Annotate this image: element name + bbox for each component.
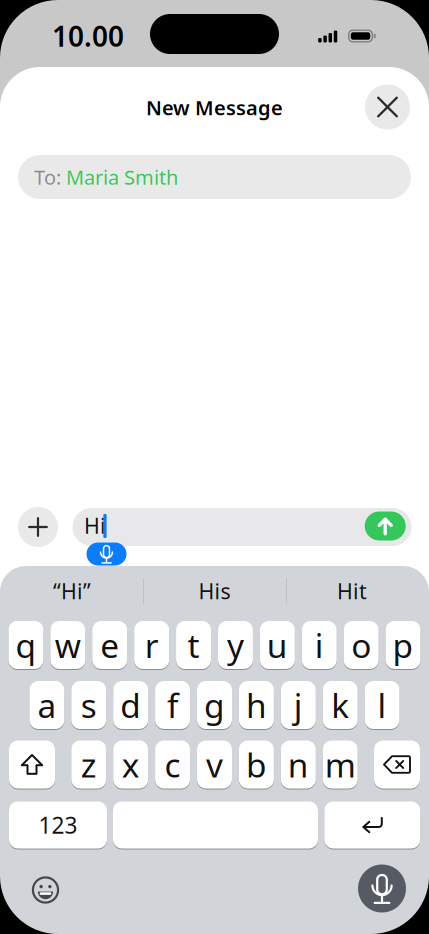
button[interactable]: Emoji — [23, 868, 67, 912]
staticText: g — [204, 683, 225, 727]
button[interactable]: u — [260, 621, 295, 669]
button[interactable]: a — [29, 681, 64, 729]
staticText: v — [206, 742, 223, 787]
button[interactable]: Hit — [283, 573, 421, 609]
button[interactable]: w — [50, 621, 85, 669]
button[interactable]: v — [197, 740, 232, 788]
staticText: r — [145, 623, 159, 667]
button[interactable]: Close — [365, 84, 410, 129]
button[interactable]: c — [155, 740, 190, 788]
button[interactable]: f — [155, 681, 190, 729]
button[interactable]: x — [113, 740, 148, 788]
button[interactable]: t — [176, 621, 211, 669]
staticText: s — [81, 683, 97, 727]
staticText: b — [246, 742, 267, 787]
button[interactable]: Send — [365, 511, 406, 540]
button[interactable]: j — [281, 681, 316, 729]
staticText: u — [267, 623, 288, 667]
staticText: n — [288, 742, 309, 787]
staticText: h — [246, 683, 267, 727]
staticText: l — [378, 683, 387, 727]
button[interactable]: o — [344, 621, 379, 669]
button[interactable]: Dictation — [358, 864, 406, 912]
staticText: o — [351, 623, 371, 667]
staticText: d — [120, 683, 141, 727]
button[interactable]: s — [71, 681, 106, 729]
staticText: New Message — [146, 94, 283, 121]
button[interactable]: n — [281, 740, 316, 788]
button[interactable]: e — [92, 621, 127, 669]
button[interactable]: l — [365, 681, 400, 729]
staticText: q — [15, 623, 36, 667]
button[interactable]: Space — [113, 801, 318, 848]
button[interactable]: h — [239, 681, 274, 729]
staticText: To: — [34, 164, 61, 190]
staticText: e — [100, 623, 119, 667]
staticText: j — [294, 683, 303, 727]
staticText: m — [325, 742, 356, 787]
staticText: c — [165, 742, 181, 787]
staticText: Hit — [337, 577, 367, 605]
staticText: w — [55, 623, 81, 667]
staticText: f — [167, 683, 178, 727]
button[interactable]: Add attachment — [18, 507, 58, 547]
staticText: His — [198, 577, 230, 605]
button[interactable]: d — [113, 681, 148, 729]
staticText: Hi — [84, 511, 106, 540]
button[interactable]: 123 — [9, 801, 107, 848]
staticText: k — [331, 683, 349, 727]
staticText: p — [392, 623, 413, 667]
staticText: t — [188, 623, 200, 667]
button[interactable]: g — [197, 681, 232, 729]
button[interactable]: q — [8, 621, 43, 669]
button[interactable]: Dictation — [86, 542, 126, 565]
button[interactable]: k — [323, 681, 358, 729]
staticText: x — [122, 742, 140, 787]
staticText: z — [81, 742, 97, 787]
staticText: Maria Smith — [66, 164, 178, 190]
staticText: a — [37, 683, 56, 727]
button[interactable]: p — [385, 621, 420, 669]
staticText: i — [315, 623, 324, 667]
button[interactable]: His — [145, 573, 283, 609]
button[interactable]: m — [323, 740, 358, 788]
button[interactable]: b — [239, 740, 274, 788]
button[interactable]: i — [302, 621, 337, 669]
button[interactable]: Delete — [374, 740, 420, 788]
button[interactable]: z — [71, 740, 106, 788]
button[interactable]: r — [134, 621, 169, 669]
button[interactable]: y — [218, 621, 253, 669]
staticText: 123 — [38, 810, 77, 840]
button[interactable] — [72, 508, 411, 546]
button[interactable]: Shift — [9, 740, 55, 788]
staticText: y — [227, 623, 244, 667]
button[interactable]: To: — [18, 155, 411, 199]
button[interactable]: Return — [324, 801, 420, 848]
staticText: 10.00 — [52, 17, 124, 55]
button[interactable]: “Hi” — [3, 573, 141, 609]
staticText: “Hi” — [53, 577, 91, 605]
